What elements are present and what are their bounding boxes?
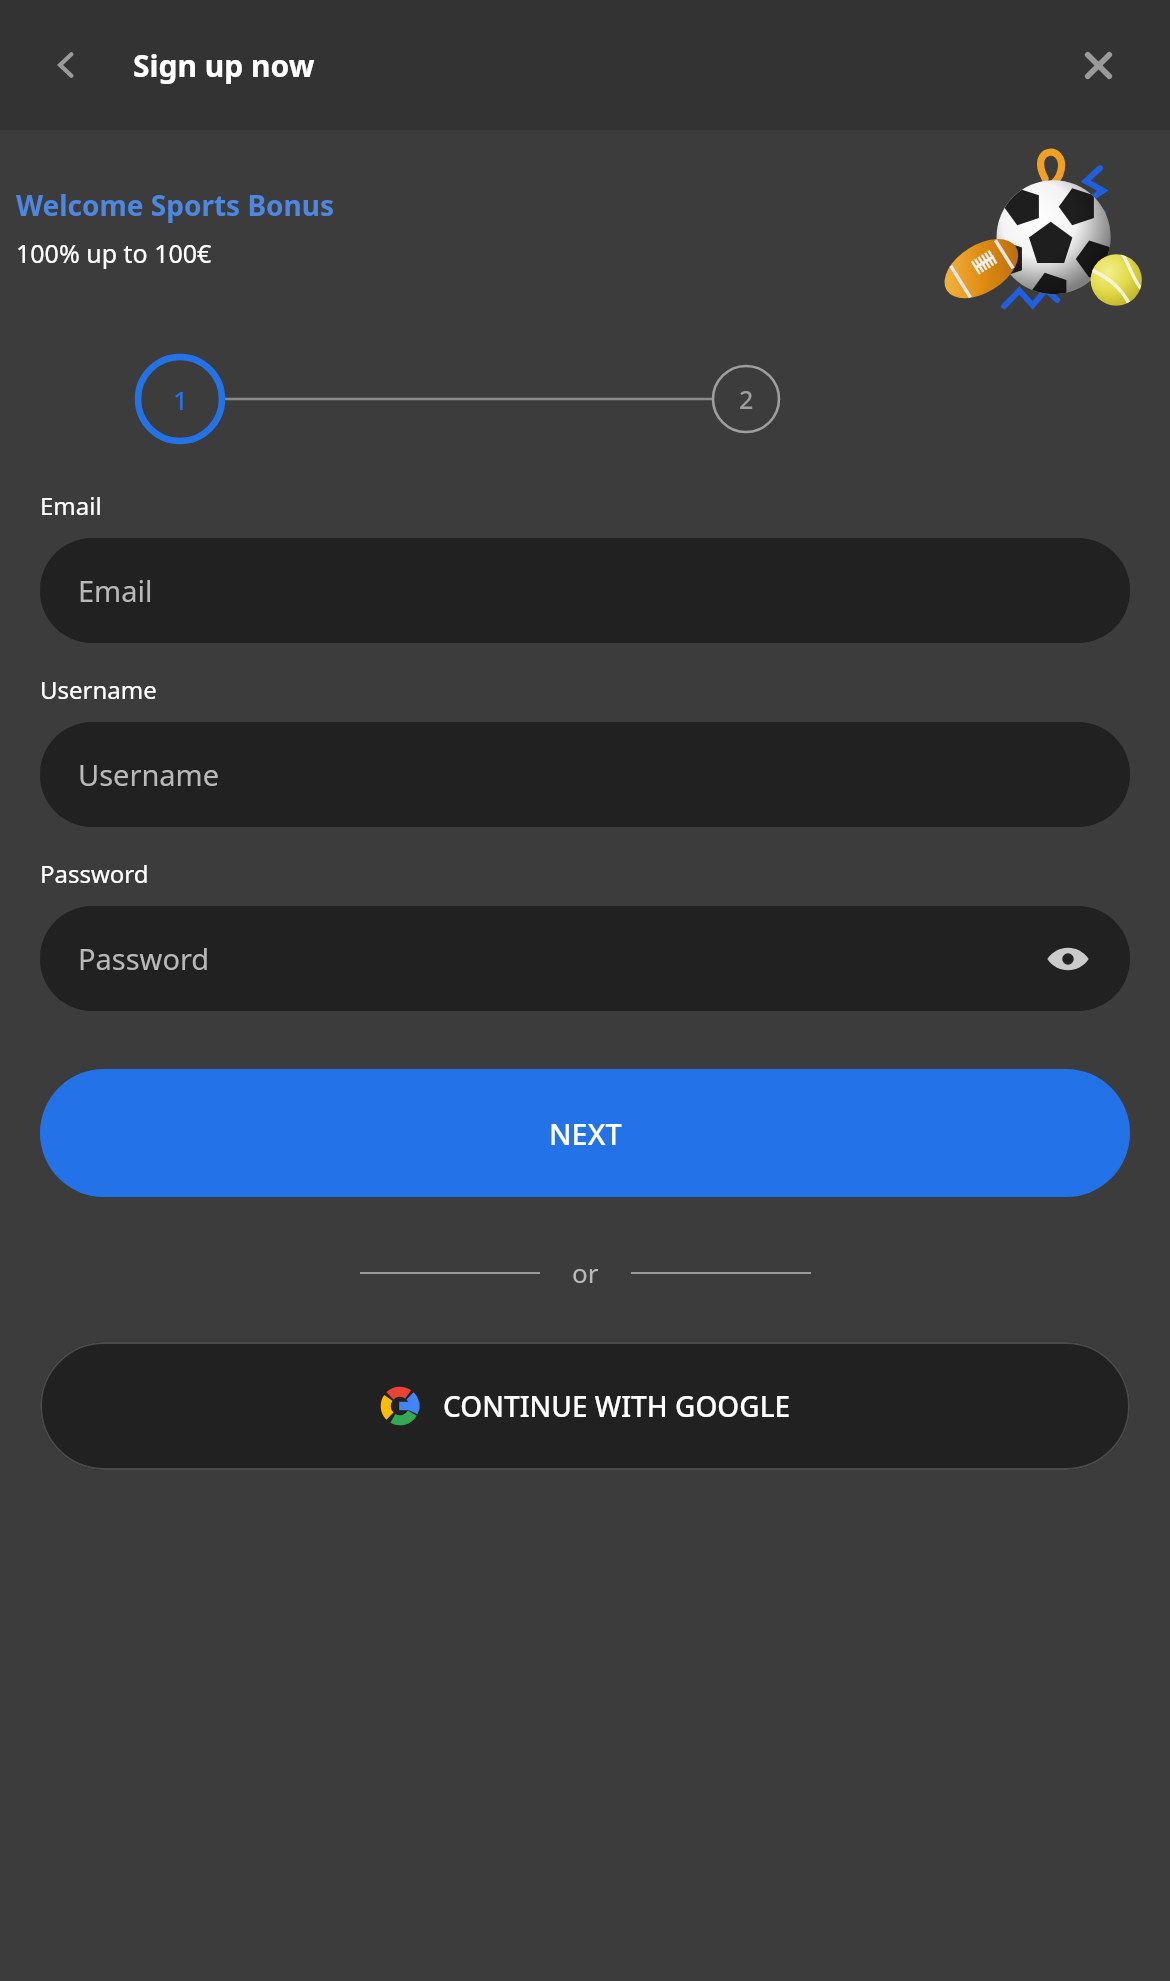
staticText: Email [40,489,102,522]
staticText: Password [78,939,210,978]
staticText: 1 [173,382,188,417]
button[interactable]: Welcome Sports Bonus [0,130,1170,325]
staticText: Username [78,755,220,794]
staticText: or [572,1255,599,1290]
staticText: Username [40,673,157,706]
staticText: CONTINUE WITH GOOGLE [443,1387,791,1425]
button[interactable]: Username [40,722,1130,827]
staticText: 100% up to 100€ [16,236,212,270]
button[interactable]: Password [40,906,1130,1011]
button[interactable]: Close [1070,37,1126,93]
button[interactable]: Show password [1038,929,1098,989]
staticText: NEXT [549,1114,622,1153]
button[interactable]: Email [40,538,1130,643]
button[interactable]: 2 [713,366,779,432]
staticText: Password [40,857,149,890]
staticText: Sign up now [133,45,315,86]
button[interactable]: NEXT [40,1069,1130,1197]
staticText: Welcome Sports Bonus [16,186,335,224]
button[interactable]: 1 [138,357,222,441]
staticText: Email [78,571,153,610]
button[interactable]: Back [40,39,92,91]
button[interactable]: CONTINUE WITH GOOGLE [40,1342,1130,1470]
staticText: 2 [739,382,754,416]
